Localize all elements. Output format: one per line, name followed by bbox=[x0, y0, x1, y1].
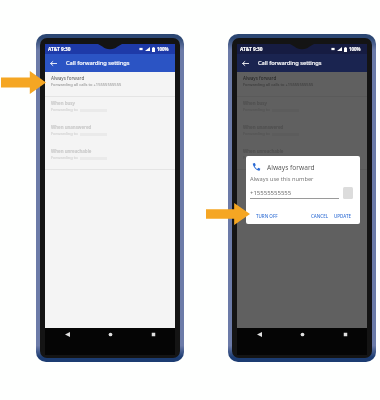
staticText: When busy bbox=[51, 100, 75, 106]
staticText: Forwarding to bbox=[51, 107, 78, 113]
staticText: Forwarding all calls to +15555555555 bbox=[243, 82, 314, 88]
staticText: Forwarding to bbox=[51, 155, 78, 161]
staticText: Forwarding to bbox=[243, 131, 270, 137]
button[interactable]: TURN OFF bbox=[256, 213, 278, 219]
staticText: When unreachable bbox=[51, 148, 92, 154]
button[interactable]: Recents bbox=[132, 328, 175, 341]
staticText: Forwarding to bbox=[51, 131, 78, 137]
staticText: When unreachable bbox=[243, 148, 284, 154]
staticText: CANCEL bbox=[311, 213, 329, 219]
button[interactable]: Home bbox=[281, 328, 324, 341]
staticText: Forwarding to bbox=[243, 107, 270, 113]
staticText: TURN OFF bbox=[256, 213, 278, 219]
staticText: 100% bbox=[157, 46, 169, 52]
button[interactable]: Back bbox=[45, 328, 89, 341]
button[interactable]: Always forward bbox=[237, 72, 367, 96]
staticText: Forwarding to bbox=[243, 155, 270, 161]
button[interactable]: Pick contact bbox=[343, 187, 353, 199]
button[interactable]: CANCEL bbox=[311, 213, 329, 219]
staticText: AT&T 9:30 bbox=[48, 46, 71, 53]
button[interactable]: UPDATE bbox=[334, 213, 351, 219]
staticText: Call forwarding settings bbox=[258, 59, 322, 67]
staticText: Always forward bbox=[243, 75, 277, 81]
button[interactable]: When unreachable bbox=[45, 145, 175, 169]
staticText: 100% bbox=[349, 46, 361, 52]
staticText: UPDATE bbox=[334, 213, 351, 219]
staticText: Always use this number bbox=[250, 175, 314, 183]
button[interactable]: When unanswered bbox=[45, 121, 175, 145]
button[interactable]: When unreachable bbox=[237, 145, 367, 169]
staticText: Call forwarding settings bbox=[66, 59, 130, 67]
button[interactable]: Recents bbox=[324, 328, 367, 341]
button[interactable]: Back bbox=[237, 328, 281, 341]
staticText: Forwarding all calls to +15555555555 bbox=[51, 82, 122, 88]
staticText: When unanswered bbox=[51, 124, 92, 130]
button[interactable]: Home bbox=[89, 328, 132, 341]
staticText: +15555555555 bbox=[250, 189, 292, 197]
button[interactable]: Back bbox=[237, 55, 253, 71]
button[interactable]: Always forward bbox=[45, 72, 175, 96]
staticText: Always forward bbox=[267, 163, 315, 172]
staticText: AT&T 9:30 bbox=[240, 46, 263, 53]
staticText: Always forward bbox=[51, 75, 85, 81]
staticText: When busy bbox=[243, 100, 267, 106]
button[interactable]: When busy bbox=[45, 97, 175, 121]
staticText: When unanswered bbox=[243, 124, 284, 130]
button[interactable]: Back bbox=[45, 55, 61, 71]
